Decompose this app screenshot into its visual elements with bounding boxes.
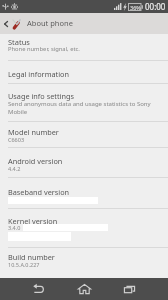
staticText: Phone number, signal, etc. [8,45,80,53]
button[interactable] [0,34,168,60]
staticText: Legal information [8,69,69,79]
button[interactable] [0,209,168,247]
button[interactable] [0,61,168,83]
button[interactable] [0,84,168,121]
staticText: Status [8,37,30,47]
staticText: Mobile [8,108,28,116]
button[interactable]: Back [16,278,60,300]
button[interactable] [0,248,168,278]
staticText: About phone [27,18,73,28]
staticText: 00:00 [145,1,166,12]
staticText: Android version [8,156,63,166]
other: Navigate up [3,19,9,29]
staticText: 36% [130,4,141,11]
staticText: Send anonymous data and usage statistics… [8,100,151,108]
button[interactable] [0,148,168,177]
staticText: Kernel version [8,216,58,226]
button[interactable]: Navigate up [0,13,168,34]
button[interactable] [0,178,168,208]
staticText: Model number [8,127,59,137]
button[interactable] [0,122,168,147]
staticText: Build number [8,252,55,262]
staticText: 4.4.2 [8,165,21,172]
staticText: C6603 [8,136,25,143]
staticText: Usage info settings [8,91,74,101]
staticText: Baseband version [8,187,70,197]
button[interactable]: Recent apps [107,278,151,300]
staticText: 10.5.A.0.227 [8,261,40,268]
button[interactable]: Home [62,278,106,300]
staticText: 3.4.0 [8,224,21,231]
